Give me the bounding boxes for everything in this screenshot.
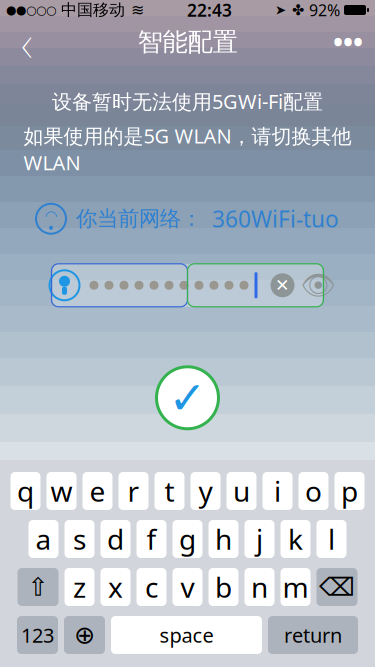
button[interactable]: e: [82, 472, 112, 510]
staticText: n: [251, 568, 268, 606]
button[interactable]: q: [10, 472, 40, 510]
staticText: 你当前网络：: [76, 206, 202, 232]
button[interactable]: w: [46, 472, 76, 510]
button[interactable]: 返回: [0, 20, 54, 64]
staticText: c: [145, 568, 158, 606]
button[interactable]: i: [262, 472, 292, 510]
button[interactable]: return: [268, 616, 358, 654]
staticText: 中国移动: [61, 0, 125, 20]
button[interactable]: 显示密码: [299, 265, 337, 305]
button[interactable]: m: [280, 568, 310, 606]
staticText: ⊕: [74, 621, 95, 649]
staticText: ●●○○○: [6, 3, 56, 17]
button[interactable]: z: [64, 568, 94, 606]
button[interactable]: n: [244, 568, 274, 606]
button[interactable]: c: [136, 568, 166, 606]
button[interactable]: 清除: [265, 265, 299, 305]
staticText: 92%: [309, 0, 340, 21]
staticText: g: [179, 520, 196, 558]
button[interactable]: y: [190, 472, 220, 510]
button[interactable]: h: [208, 520, 238, 558]
staticText: d: [107, 520, 124, 558]
staticText: 123: [21, 622, 54, 648]
staticText: ◠: [45, 208, 56, 224]
button[interactable]: v: [172, 568, 202, 606]
button[interactable]: space: [111, 616, 262, 654]
staticText: a: [35, 520, 51, 558]
staticText: i: [274, 472, 281, 510]
staticText: ➤: [275, 2, 286, 17]
button[interactable]: p: [334, 472, 364, 510]
staticText: u: [233, 472, 250, 510]
button[interactable]: b: [208, 568, 238, 606]
staticText: ⇧: [27, 573, 48, 601]
staticText: f: [146, 520, 156, 558]
staticText: z: [73, 568, 86, 606]
staticText: ✤: [292, 2, 304, 18]
staticText: 如果使用的是5G WLAN，请切换其他WLAN: [23, 123, 351, 176]
staticText: b: [215, 568, 232, 606]
staticText: y: [198, 472, 212, 510]
button[interactable]: g: [172, 520, 202, 558]
staticText: s: [73, 520, 86, 558]
staticText: 22:43: [187, 0, 232, 21]
staticText: t: [164, 472, 174, 510]
staticText: ⌫: [319, 573, 355, 601]
staticText: return: [284, 622, 342, 648]
button[interactable]: t: [154, 472, 184, 510]
staticText: e: [89, 472, 105, 510]
staticText: r: [127, 472, 139, 510]
staticText: 360WiFi-tuo: [212, 204, 339, 234]
staticText: space: [159, 622, 213, 648]
staticText: •••: [333, 24, 363, 60]
button[interactable]: s: [64, 520, 94, 558]
staticText: q: [17, 472, 34, 510]
staticText: 设备暂时无法使用5GWi-Fi配置: [52, 88, 323, 115]
staticText: p: [341, 472, 358, 510]
staticText: w: [50, 472, 72, 510]
staticText: ✓: [168, 372, 206, 424]
button[interactable]: ⌫: [316, 568, 357, 606]
button[interactable]: a: [28, 520, 58, 558]
button[interactable]: x: [100, 568, 130, 606]
staticText: j: [256, 520, 263, 558]
button[interactable]: j: [244, 520, 274, 558]
staticText: ‹: [21, 7, 33, 77]
button[interactable]: d: [100, 520, 130, 558]
staticText: v: [180, 568, 194, 606]
button[interactable]: f: [136, 520, 166, 558]
staticText: l: [328, 520, 335, 558]
staticText: o: [305, 472, 322, 510]
button[interactable]: r: [118, 472, 148, 510]
staticText: 👁: [300, 269, 336, 301]
staticText: k: [288, 520, 303, 558]
staticText: h: [215, 520, 232, 558]
staticText: 智能配置: [137, 26, 237, 57]
staticText: ≋: [131, 1, 144, 19]
button[interactable]: ⇧: [17, 568, 58, 606]
button[interactable]: k: [280, 520, 310, 558]
button[interactable]: u: [226, 472, 256, 510]
staticText: m: [282, 568, 308, 606]
button[interactable]: 123: [17, 616, 58, 654]
button[interactable]: ⊕: [64, 616, 105, 654]
button[interactable]: o: [298, 472, 328, 510]
button[interactable]: 更多: [321, 20, 375, 64]
staticText: ✕: [275, 275, 290, 295]
button[interactable]: l: [316, 520, 346, 558]
staticText: x: [108, 568, 123, 606]
